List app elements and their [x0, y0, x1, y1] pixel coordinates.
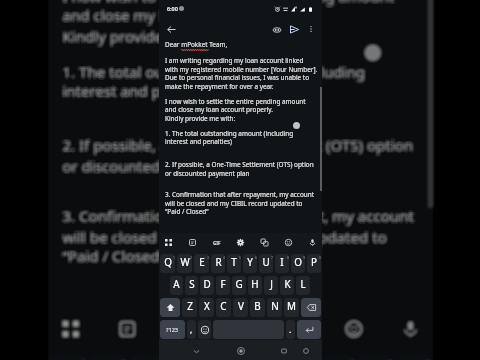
button[interactable]: E — [133, 356, 168, 360]
button[interactable]: Voice input — [395, 312, 430, 347]
button[interactable]: Shift — [160, 298, 180, 317]
button[interactable]: E — [130, 358, 165, 360]
button[interactable]: D — [200, 276, 214, 295]
button[interactable]: T — [227, 254, 241, 273]
button[interactable]: Apps — [52, 311, 87, 347]
button[interactable]: Settings — [223, 311, 258, 347]
button[interactable]: Stickers — [335, 312, 371, 347]
button[interactable]: Clipboard — [108, 313, 143, 348]
button[interactable]: GIF — [165, 313, 200, 348]
button[interactable]: Settings — [233, 235, 248, 250]
button[interactable]: I — [320, 358, 353, 360]
button[interactable]: C — [216, 298, 231, 317]
button[interactable]: Apps — [52, 312, 88, 347]
button[interactable]: E — [131, 354, 166, 360]
button[interactable]: Apps — [55, 312, 90, 347]
button[interactable]: Stickers — [334, 311, 369, 347]
button[interactable]: Translate — [279, 309, 315, 345]
button[interactable]: Stickers — [336, 313, 372, 349]
button[interactable]: ?123 — [160, 320, 185, 339]
button[interactable]: GIF — [168, 310, 203, 345]
button[interactable]: Settings — [224, 311, 259, 346]
button[interactable]: Clipboard — [108, 310, 143, 346]
button[interactable]: Apps — [54, 311, 89, 347]
button[interactable]: W — [177, 254, 192, 273]
button[interactable]: Clipboard — [110, 313, 145, 349]
button[interactable]: Settings — [225, 312, 260, 347]
button[interactable]: E — [131, 355, 166, 360]
button[interactable]: Translate — [280, 313, 316, 349]
button[interactable]: Apps — [52, 313, 88, 349]
button[interactable]: E — [132, 355, 167, 360]
button[interactable]: Clipboard — [112, 312, 147, 347]
button[interactable]: GIF — [165, 311, 201, 346]
button[interactable]: Emoji — [198, 320, 211, 339]
button[interactable]: Clipboard — [109, 309, 144, 345]
button[interactable]: I — [320, 355, 353, 360]
button[interactable]: Apps — [54, 311, 89, 346]
button[interactable]: Settings — [224, 309, 259, 345]
button[interactable]: Stickers — [335, 313, 370, 348]
button[interactable]: Apps — [53, 313, 88, 349]
button[interactable]: Voice input — [394, 311, 429, 347]
button[interactable]: Apps — [54, 312, 89, 347]
button[interactable]: Stickers — [338, 310, 373, 346]
button[interactable]: Stickers — [338, 310, 373, 345]
button[interactable]: Clipboard — [110, 310, 145, 346]
button[interactable]: Stickers — [334, 310, 370, 346]
button[interactable]: Settings — [224, 310, 260, 345]
button[interactable]: Stickers — [336, 312, 372, 348]
button[interactable]: Settings — [221, 310, 257, 345]
button[interactable]: Q — [160, 254, 175, 273]
button[interactable]: Translate — [281, 313, 316, 348]
button[interactable]: GIF — [165, 309, 201, 345]
